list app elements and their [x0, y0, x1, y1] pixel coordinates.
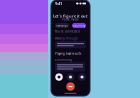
button[interactable]: Keyboard	[67, 73, 74, 81]
button[interactable]: End call	[66, 82, 75, 91]
staticText: Let's figure it out	[53, 13, 88, 19]
button[interactable]: Mute	[78, 73, 86, 81]
staticText: Continuing	[55, 58, 72, 61]
button[interactable]: Transcript	[55, 23, 69, 28]
staticText: Listening	[72, 24, 85, 27]
button[interactable]: Listening	[72, 23, 86, 28]
staticText: 9:41	[55, 1, 62, 6]
staticText: Voice mode	[62, 18, 79, 21]
staticText: Playing back results	[55, 52, 81, 55]
staticText: Transcript	[56, 24, 68, 27]
button[interactable]: Video	[55, 73, 63, 81]
staticText: You're connected	[55, 30, 80, 33]
staticText: Walking through	[55, 37, 78, 40]
